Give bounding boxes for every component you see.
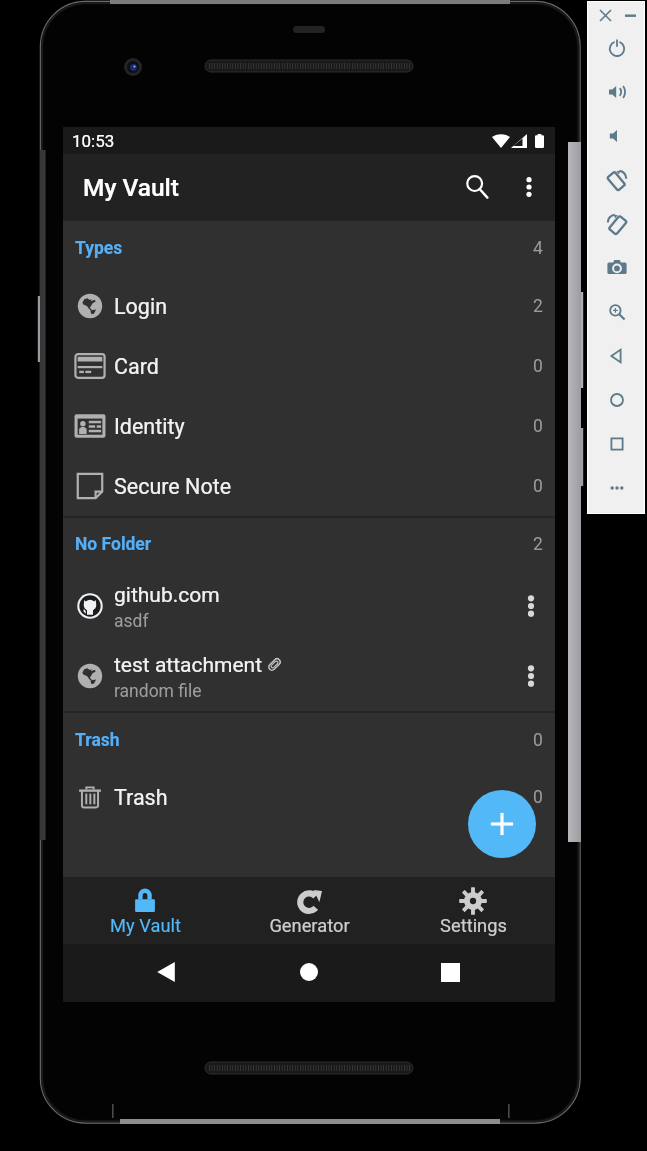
- staticText: Secure Note: [114, 474, 232, 499]
- staticText: Identity: [114, 414, 185, 439]
- button[interactable]: More: [601, 472, 633, 504]
- button[interactable]: Screenshot: [601, 252, 633, 284]
- staticText: 0: [533, 730, 543, 751]
- button[interactable]: My Vault: [63, 877, 227, 944]
- button[interactable]: Home: [601, 384, 633, 416]
- staticText: Types: [75, 238, 123, 259]
- staticText: test attachment: [114, 653, 263, 678]
- button[interactable]: Search: [452, 163, 502, 213]
- staticText: My Vault: [83, 173, 180, 202]
- staticText: Card: [114, 354, 159, 379]
- button[interactable]: Minimise: [621, 6, 639, 24]
- button[interactable]: test attachment: [63, 641, 555, 711]
- button[interactable]: Recent apps: [426, 948, 474, 996]
- staticText: 4: [533, 238, 543, 259]
- staticText: 2: [533, 296, 543, 317]
- staticText: Trash: [114, 785, 168, 810]
- button[interactable]: More options: [504, 162, 554, 212]
- button[interactable]: Add item: [468, 790, 536, 858]
- button[interactable]: Zoom: [601, 296, 633, 328]
- staticText: No Folder: [75, 534, 152, 555]
- staticText: My Vault: [110, 915, 181, 936]
- button[interactable]: Generator: [227, 877, 391, 944]
- staticText: Settings: [440, 915, 507, 936]
- button[interactable]: Home: [285, 948, 333, 996]
- staticText: 10:53: [72, 131, 115, 151]
- staticText: random file: [114, 681, 202, 702]
- staticText: 0: [533, 476, 543, 497]
- button[interactable]: Back: [142, 948, 190, 996]
- button[interactable]: Login: [63, 276, 555, 336]
- staticText: Trash: [75, 730, 120, 751]
- button[interactable]: github.com: [63, 571, 555, 641]
- button[interactable]: Card: [63, 336, 555, 396]
- button[interactable]: Rotate right: [601, 208, 633, 240]
- button[interactable]: Trash: [63, 767, 555, 827]
- button[interactable]: Power: [601, 32, 633, 64]
- button[interactable]: Back: [601, 340, 633, 372]
- staticText: 2: [533, 534, 543, 555]
- staticText: 0: [533, 416, 543, 437]
- button[interactable]: Identity: [63, 396, 555, 456]
- staticText: Login: [114, 294, 168, 319]
- staticText: Generator: [269, 915, 350, 936]
- button[interactable]: Item options: [508, 583, 554, 629]
- button[interactable]: Item options: [508, 653, 554, 699]
- button[interactable]: Settings: [391, 877, 555, 944]
- button[interactable]: Overview: [601, 428, 633, 460]
- staticText: 0: [533, 787, 543, 808]
- staticText: 0: [533, 356, 543, 377]
- button[interactable]: Volume down: [601, 120, 633, 152]
- button[interactable]: Rotate left: [601, 164, 633, 196]
- button[interactable]: Volume up: [601, 76, 633, 108]
- button[interactable]: Close: [596, 6, 614, 24]
- staticText: github.com: [114, 583, 220, 608]
- staticText: asdf: [114, 611, 149, 632]
- button[interactable]: Secure Note: [63, 456, 555, 516]
